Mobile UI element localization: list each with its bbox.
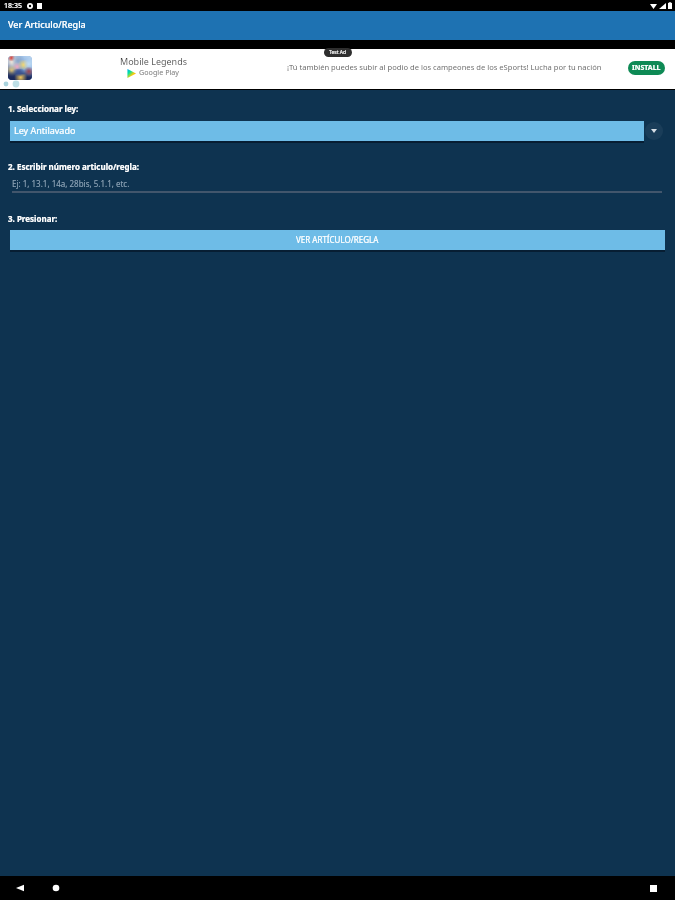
staticText: Test Ad [329, 49, 347, 56]
staticText: 3. Presionar: [8, 213, 58, 224]
staticText: Ley Antilavado [14, 124, 76, 136]
button[interactable]: Anuncio Mobile Legends [0, 49, 675, 89]
button[interactable]: Home [52, 884, 60, 892]
button[interactable]: Desplegar opciones [645, 122, 663, 140]
button[interactable]: Ej: 1, 13.1, 14a, 28bis, 5.1.1, etc. [12, 178, 662, 193]
button[interactable]: VER ARTÍCULO/REGLA [10, 230, 665, 250]
staticText: INSTALL [632, 63, 661, 73]
staticText: Ej: 1, 13.1, 14a, 28bis, 5.1.1, etc. [12, 178, 130, 189]
button[interactable]: Ver Articulo/Regla [0, 11, 675, 40]
button[interactable]: Ley Antilavado [10, 121, 644, 141]
staticText: ¡Tú también puedes subir al podio de los… [287, 62, 602, 72]
staticText: Google Play [139, 67, 180, 77]
staticText: 18:35 [4, 1, 22, 11]
button[interactable]: INSTALL [628, 61, 665, 75]
staticText: Mobile Legends [120, 55, 188, 67]
staticText: VER ARTÍCULO/REGLA [296, 234, 379, 245]
button[interactable]: Back [16, 884, 24, 892]
staticText: 2. Escribir número articulo/regla: [8, 161, 140, 172]
staticText: Ver Articulo/Regla [8, 18, 86, 30]
staticText: 1. Seleccionar ley: [8, 103, 79, 114]
